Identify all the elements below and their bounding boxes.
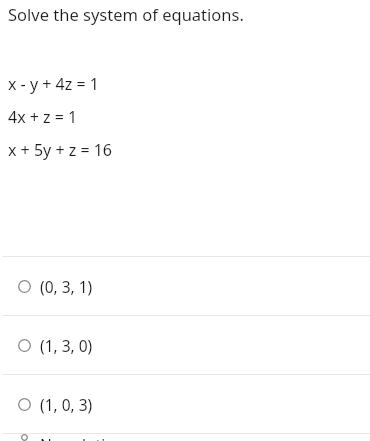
staticText: x + 5y + z = 16 bbox=[8, 139, 113, 161]
staticText: (0, 3, 1) bbox=[40, 276, 93, 297]
button[interactable]: (1, 0, 3) bbox=[0, 375, 370, 433]
button[interactable]: (0, 3, 1) bbox=[0, 257, 370, 315]
staticText: (1, 0, 3) bbox=[40, 394, 93, 415]
staticText: (1, 3, 0) bbox=[40, 335, 93, 356]
staticText: No solution bbox=[40, 434, 125, 441]
button[interactable]: (1, 3, 0) bbox=[0, 316, 370, 374]
button[interactable]: No solution bbox=[0, 434, 370, 441]
staticText: x - y + 4z = 1 bbox=[8, 73, 99, 95]
staticText: Solve the system of equations. bbox=[8, 3, 244, 25]
staticText: 4x + z = 1 bbox=[8, 106, 78, 128]
